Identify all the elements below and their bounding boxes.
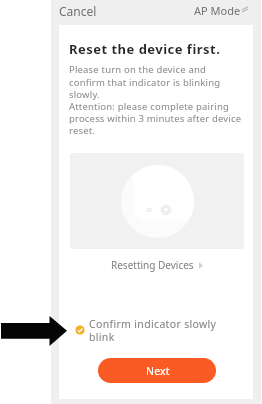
staticText: AP Mode [194,3,241,18]
other: Help [242,6,248,12]
button[interactable]: Resetting Devices [70,255,244,275]
staticText: Resetting Devices [111,258,194,272]
staticText: Please turn on the device and confirm th… [69,63,242,136]
button[interactable]: Next [98,358,216,383]
staticText: Cancel [59,3,97,19]
staticText: Next [146,364,170,378]
button[interactable]: Cancel [56,3,100,19]
staticText: Confirm indicator slowly blink [89,317,217,344]
button[interactable]: AP Mode [191,3,250,18]
staticText: Reset the device first. [69,40,221,58]
button[interactable]: Confirm indicator slowly blink [69,317,243,344]
other: Annotation arrow [1,316,67,346]
